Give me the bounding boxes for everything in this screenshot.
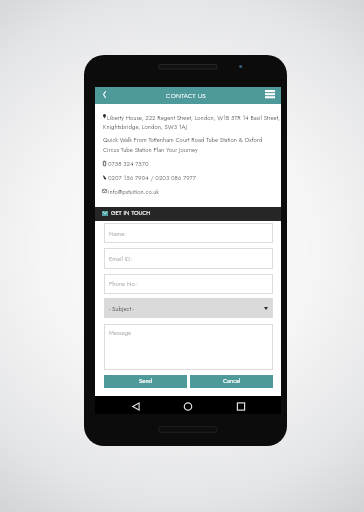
button[interactable]: - Subject - <box>104 298 273 318</box>
staticText: Message <box>109 329 132 338</box>
button[interactable]: Back <box>122 396 150 414</box>
staticText: info@pstuition.co.uk <box>108 188 159 197</box>
staticText: CONTACT US <box>166 91 207 100</box>
button[interactable]: Recent apps <box>227 396 255 414</box>
button[interactable]: Send <box>104 375 187 388</box>
staticText: Email ID: <box>109 255 132 264</box>
staticText: Phone No.: <box>109 280 138 289</box>
button[interactable]: Menu <box>262 87 281 104</box>
staticText: 0758 324 7570 <box>108 160 149 169</box>
button[interactable]: GET IN TOUCH <box>95 207 281 221</box>
staticText: Liberty House, 222 Regent Street, London… <box>107 114 280 123</box>
button[interactable]: Cancel <box>190 375 273 388</box>
button[interactable]: Home <box>174 396 202 414</box>
button[interactable]: Name: <box>104 223 273 243</box>
staticText: Circus Tube Station Plan Your Journey <box>103 146 198 155</box>
button[interactable]: Back <box>95 87 112 104</box>
staticText: - Subject - <box>109 305 134 314</box>
staticText: Knightsbridge, London, SW3 1AJ <box>103 123 187 132</box>
button[interactable]: Email ID: <box>104 248 273 269</box>
staticText: Name: <box>109 230 127 239</box>
staticText: GET IN TOUCH <box>111 209 151 217</box>
button[interactable]: Phone No.: <box>104 274 273 294</box>
staticText: 0207 156 7904 / 0203 086 7977 <box>108 174 196 183</box>
staticText: Cancel <box>223 377 241 386</box>
button[interactable]: Message <box>104 324 273 370</box>
staticText: Quick Walk From Tottenham Court Road Tub… <box>103 136 263 145</box>
staticText: Send <box>139 377 152 386</box>
